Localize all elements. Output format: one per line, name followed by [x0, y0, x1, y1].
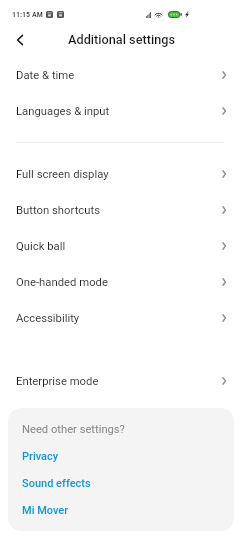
staticText: Languages & input	[16, 105, 110, 118]
button[interactable]: Enterprise mode	[0, 363, 242, 399]
staticText: Need other settings?	[22, 423, 125, 436]
button[interactable]: Languages & input	[0, 93, 242, 129]
staticText: Sound effects	[22, 477, 91, 490]
button[interactable]: Back	[8, 28, 32, 52]
staticText: Mi Mover	[22, 504, 69, 517]
staticText: Quick ball	[16, 240, 66, 253]
staticText: Privacy	[22, 450, 59, 463]
button[interactable]: One-handed mode	[0, 264, 242, 300]
staticText: Additional settings	[68, 32, 175, 47]
button[interactable]: Quick ball	[0, 228, 242, 264]
button[interactable]: Sound effects	[22, 470, 234, 497]
button[interactable]: Mi Mover	[22, 497, 234, 524]
button[interactable]: Privacy	[22, 443, 234, 470]
button[interactable]: Button shortcuts	[0, 192, 242, 228]
staticText: Full screen display	[16, 168, 109, 181]
staticText: Button shortcuts	[16, 204, 100, 217]
staticText: Accessibility	[16, 312, 80, 325]
staticText: One-handed mode	[16, 276, 108, 289]
button[interactable]: Accessibility	[0, 300, 242, 336]
staticText: 11:15 AM	[12, 10, 43, 19]
staticText: Enterprise mode	[16, 375, 99, 388]
staticText: Date & time	[16, 69, 75, 82]
button[interactable]: Date & time	[0, 57, 242, 93]
button[interactable]: Full screen display	[0, 156, 242, 192]
